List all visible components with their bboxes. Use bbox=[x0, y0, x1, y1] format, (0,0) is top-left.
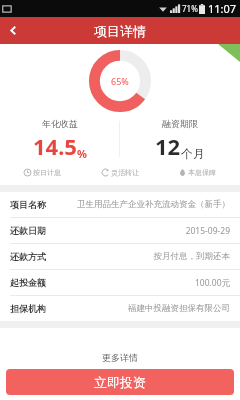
staticText: 14.5 bbox=[33, 131, 77, 161]
button[interactable]: Back bbox=[0, 17, 27, 44]
staticText: 项目详情 bbox=[94, 23, 146, 39]
staticText: 更多详情 bbox=[102, 352, 138, 363]
staticText: 福建中投融资担保有限公司 bbox=[128, 303, 230, 314]
staticText: 12 bbox=[155, 131, 181, 161]
staticText: 项目名称 bbox=[10, 199, 46, 210]
staticText: 融资期限 bbox=[162, 118, 198, 129]
staticText: 100.00元 bbox=[194, 277, 230, 289]
staticText: 本息保障 bbox=[188, 168, 216, 177]
button[interactable]: 担保机构 bbox=[0, 296, 240, 321]
button[interactable]: 更多详情 bbox=[0, 349, 240, 366]
staticText: 起投金额 bbox=[10, 277, 46, 288]
button[interactable]: 还款日期 bbox=[0, 218, 240, 243]
staticText: 按日计息 bbox=[33, 168, 61, 177]
staticText: 71% bbox=[182, 3, 198, 14]
staticText: 11:07 bbox=[208, 1, 237, 16]
staticText: 年化收益 bbox=[42, 118, 78, 129]
button[interactable]: 起投金额 bbox=[0, 270, 240, 295]
staticText: 立即投资 bbox=[94, 374, 146, 390]
staticText: 担保机构 bbox=[10, 303, 46, 314]
staticText: 按月付息，到期还本 bbox=[153, 251, 230, 262]
staticText: 个月 bbox=[181, 146, 205, 161]
button[interactable]: 还款方式 bbox=[0, 244, 240, 269]
button[interactable]: 项目名称 bbox=[0, 192, 240, 217]
button[interactable]: 立即投资 bbox=[6, 369, 234, 395]
staticText: % bbox=[77, 146, 87, 161]
staticText: 还款方式 bbox=[10, 251, 46, 262]
staticText: 2015-09-29 bbox=[185, 225, 230, 237]
staticText: 还款日期 bbox=[10, 225, 46, 236]
staticText: 灵活转让 bbox=[111, 168, 139, 177]
staticText: 65% bbox=[111, 75, 129, 87]
staticText: 卫生用品生产企业补充流动资金（新手） bbox=[77, 199, 230, 210]
